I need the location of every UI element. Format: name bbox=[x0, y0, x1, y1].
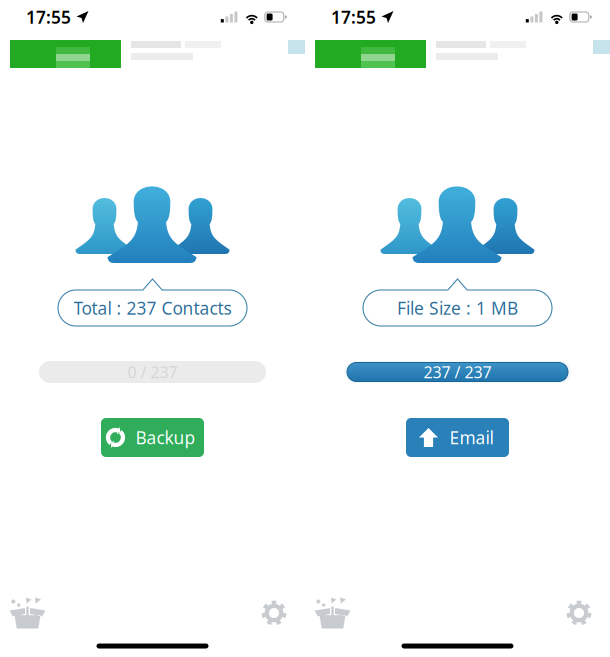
button[interactable]: Offers bbox=[0, 590, 56, 636]
button[interactable]: Backup bbox=[101, 418, 204, 457]
staticText: 17:55 bbox=[331, 5, 376, 28]
staticText: Backup bbox=[135, 426, 195, 449]
staticText: File Size : 1 MB bbox=[397, 296, 518, 319]
staticText: Total : 237 Contacts bbox=[73, 296, 231, 319]
button[interactable]: Email bbox=[406, 418, 509, 457]
staticText: 17:55 bbox=[26, 5, 71, 28]
button[interactable]: Settings bbox=[246, 590, 302, 636]
staticText: 237 / 237 bbox=[423, 361, 491, 383]
staticText: Email bbox=[449, 426, 493, 449]
button[interactable]: Settings bbox=[551, 590, 607, 636]
button[interactable]: Offers bbox=[305, 590, 361, 636]
staticText: 0 / 237 bbox=[127, 361, 177, 383]
